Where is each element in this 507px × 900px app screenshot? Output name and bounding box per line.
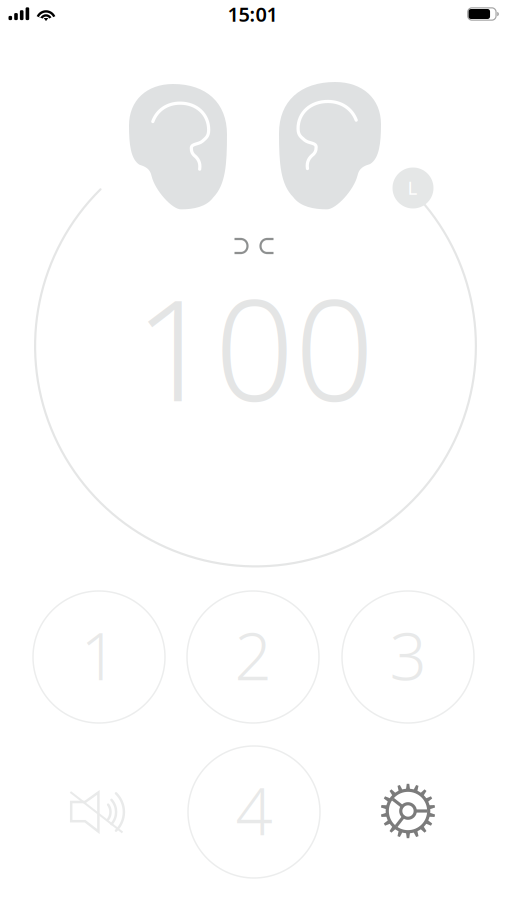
staticText: 2 [234,612,271,698]
staticText: L [407,175,417,200]
staticText: 1 [80,612,117,698]
button[interactable]: L [392,167,433,208]
button[interactable]: 3 [342,591,474,723]
button[interactable]: Settings [379,782,437,840]
staticText: 15:01 [227,1,277,27]
staticText: 4 [235,767,272,853]
button[interactable]: 1 [33,591,165,723]
button[interactable]: Mute [67,781,129,843]
button[interactable]: 2 [187,591,319,723]
button[interactable]: 4 [188,746,320,878]
staticText: 100 [134,254,374,440]
staticText: 3 [389,612,426,698]
